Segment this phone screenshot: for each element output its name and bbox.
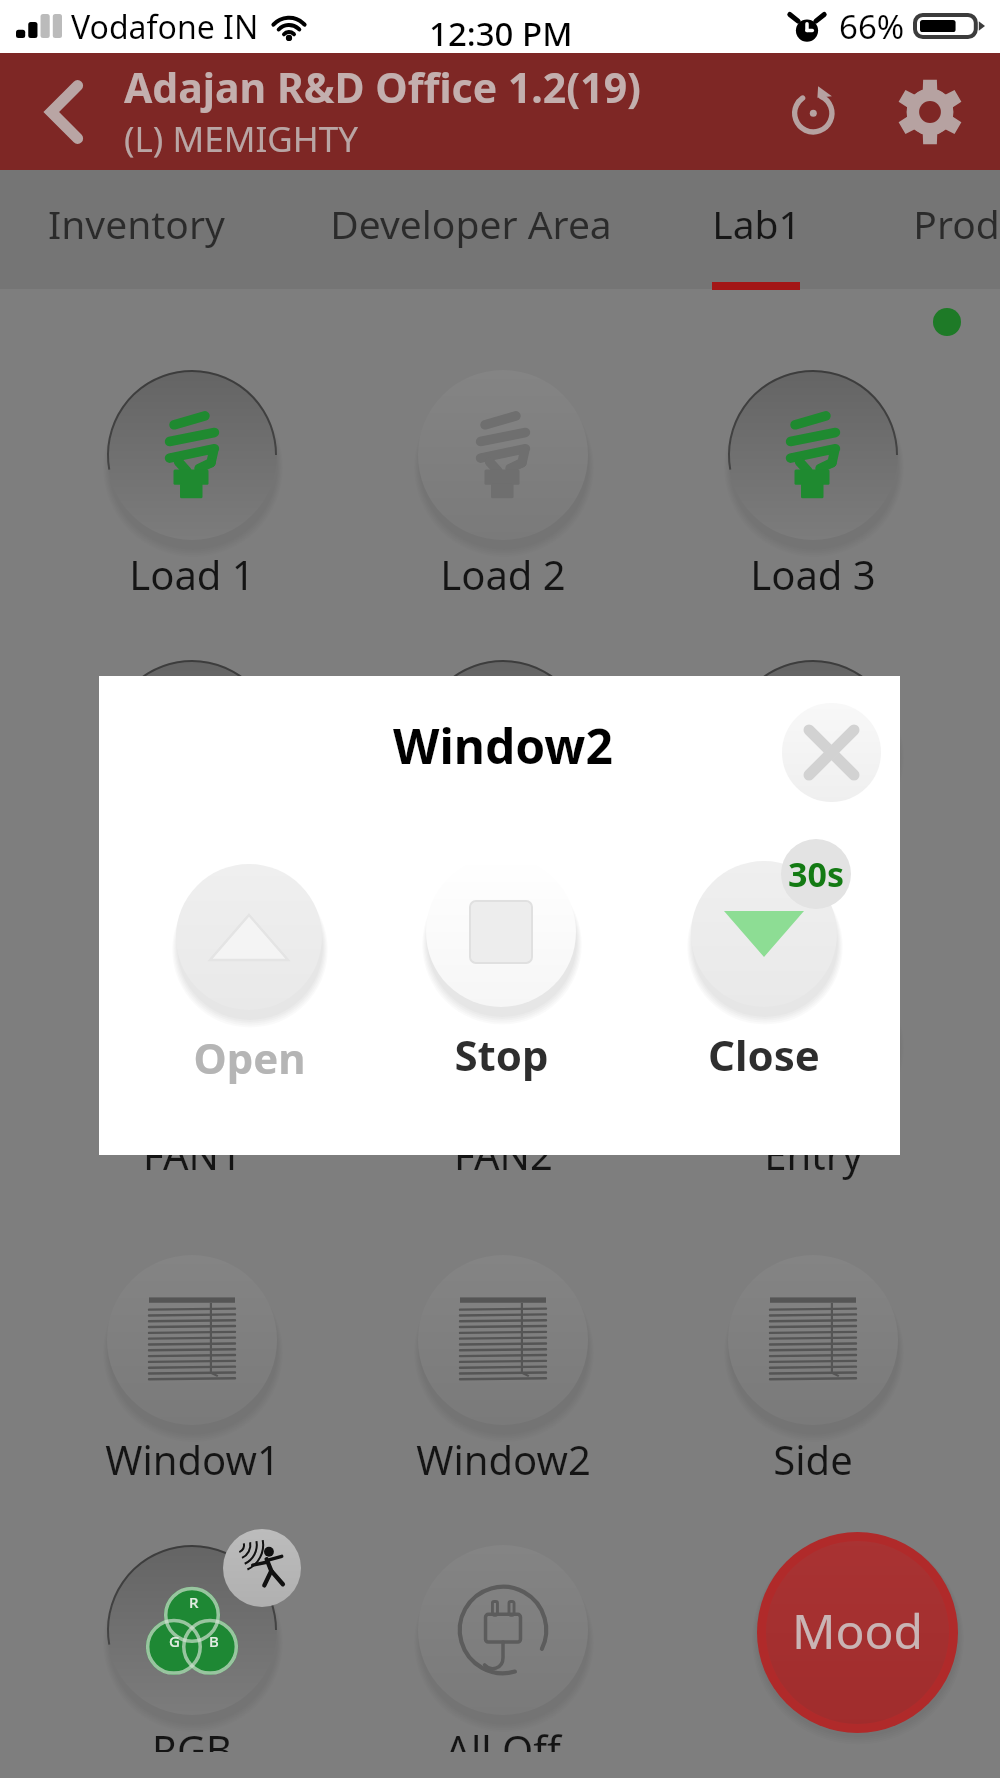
staticText: Developer Area bbox=[330, 197, 612, 250]
button[interactable]: RGB bbox=[72, 1537, 312, 1774]
button[interactable] bbox=[176, 864, 322, 1010]
button[interactable]: 30s bbox=[781, 839, 851, 909]
button[interactable]: Lab1 bbox=[681, 170, 831, 289]
button[interactable]: Load 3 bbox=[693, 362, 933, 599]
button[interactable]: Inventory bbox=[16, 170, 256, 289]
button[interactable]: Motion sensor bbox=[223, 1529, 301, 1607]
staticText: Adajan R&D Office 1.2(19) bbox=[124, 59, 642, 115]
staticText: Load 4 bbox=[129, 837, 255, 891]
staticText: 12:30 PM bbox=[429, 11, 573, 56]
staticText: Inventory bbox=[48, 197, 225, 250]
staticText: FAN1 bbox=[143, 1127, 242, 1181]
staticText: Side bbox=[773, 1432, 853, 1486]
staticText: Entry bbox=[764, 1127, 863, 1181]
button[interactable]: Load 2 bbox=[383, 362, 623, 599]
staticText: G bbox=[169, 1631, 180, 1651]
staticText: B bbox=[209, 1631, 219, 1651]
staticText: Window2 bbox=[416, 1432, 591, 1486]
button[interactable]: Refresh bbox=[773, 53, 859, 170]
button[interactable]: Window1 bbox=[72, 1247, 312, 1484]
button[interactable]: All Off bbox=[383, 1537, 623, 1774]
button[interactable]: Load 1 bbox=[72, 362, 312, 599]
button[interactable]: Close dialog bbox=[782, 703, 881, 802]
button[interactable]: FAN1 bbox=[72, 942, 312, 1179]
staticText: 66% bbox=[839, 4, 905, 49]
button[interactable]: Window2 bbox=[383, 1247, 623, 1484]
button[interactable] bbox=[691, 861, 837, 1007]
staticText: RGB bbox=[152, 1722, 232, 1776]
staticText: Vodafone IN bbox=[71, 5, 259, 49]
staticText: Load 3 bbox=[750, 547, 876, 601]
staticText: Stop bbox=[454, 1026, 549, 1083]
button[interactable]: Side bbox=[693, 1247, 933, 1484]
button[interactable] bbox=[426, 857, 576, 1007]
button[interactable]: FAN2 bbox=[383, 942, 623, 1179]
staticText: Mood bbox=[792, 1598, 924, 1663]
button[interactable]: Back bbox=[16, 53, 112, 170]
button[interactable]: Settings bbox=[886, 53, 974, 170]
staticText: Window2 bbox=[393, 713, 613, 778]
staticText: Product bbox=[913, 197, 1000, 250]
staticText: FAN2 bbox=[454, 1127, 553, 1181]
staticText: R bbox=[189, 1592, 199, 1612]
staticText: Window1 bbox=[105, 1432, 280, 1486]
staticText: Lab1 bbox=[712, 197, 801, 250]
button[interactable]: Product bbox=[860, 170, 1000, 289]
staticText: Load 1 bbox=[129, 547, 255, 601]
staticText: (L) MEMIGHTY bbox=[124, 115, 358, 163]
button[interactable]: Load 5 bbox=[383, 652, 623, 889]
staticText: Load 6 bbox=[750, 837, 876, 891]
staticText: Load 2 bbox=[440, 547, 566, 601]
button[interactable]: Load 6 bbox=[693, 652, 933, 889]
staticText: Open bbox=[193, 1029, 306, 1086]
button[interactable]: Developer Area bbox=[306, 170, 636, 289]
staticText: All Off bbox=[445, 1722, 561, 1776]
staticText: Close bbox=[708, 1026, 820, 1083]
staticText: 30s bbox=[788, 851, 844, 897]
button[interactable]: Load 4 bbox=[72, 652, 312, 889]
button[interactable]: Entry bbox=[693, 942, 933, 1179]
button[interactable]: Mood bbox=[757, 1532, 958, 1733]
